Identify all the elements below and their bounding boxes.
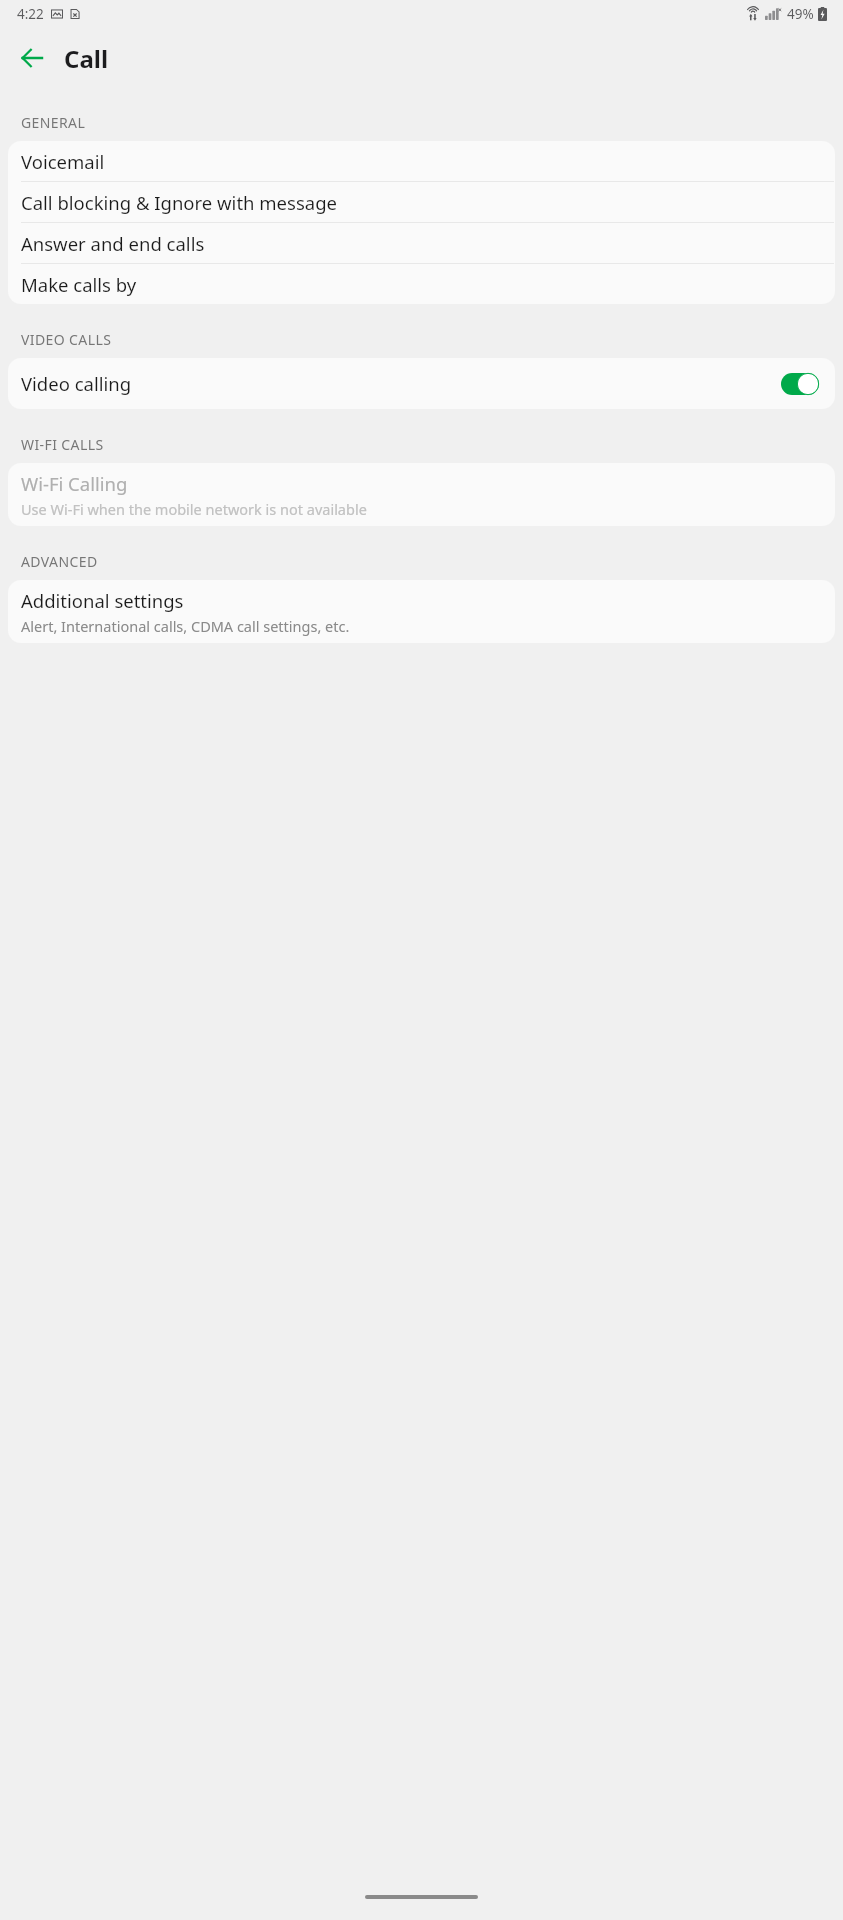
staticText: Voicemail [21, 149, 105, 174]
staticText: ADVANCED [21, 552, 98, 571]
staticText: Additional settings [21, 588, 184, 613]
button[interactable]: Answer and end calls [8, 223, 835, 263]
button[interactable]: Make calls by [8, 264, 835, 304]
button[interactable]: Call blocking & Ignore with message [8, 182, 835, 222]
staticText: GENERAL [21, 113, 86, 132]
staticText: VIDEO CALLS [21, 330, 112, 349]
staticText: Alert, International calls, CDMA call se… [21, 616, 350, 636]
button[interactable]: Voicemail [8, 141, 835, 181]
staticText: Video calling [21, 371, 781, 396]
staticText: Use Wi-Fi when the mobile network is not… [21, 499, 367, 519]
button[interactable]: Back [8, 34, 56, 82]
staticText: Make calls by [21, 272, 137, 297]
staticText: Wi-Fi Calling [21, 471, 128, 496]
staticText: WI-FI CALLS [21, 435, 104, 454]
staticText: 4:22 [17, 5, 44, 23]
staticText: Call [64, 42, 109, 75]
staticText: 49% [787, 5, 814, 23]
button[interactable]: Additional settings [8, 580, 835, 643]
staticText: Answer and end calls [21, 231, 205, 256]
button[interactable]: Video calling [8, 358, 835, 409]
button[interactable]: Wi-Fi Calling [8, 463, 835, 526]
staticText: Call blocking & Ignore with message [21, 190, 337, 215]
